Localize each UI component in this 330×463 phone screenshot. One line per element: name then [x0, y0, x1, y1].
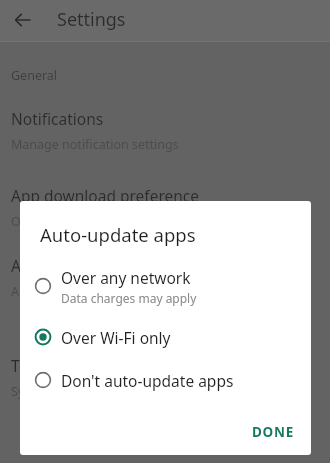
staticText: Auto-update over Wi-Fi: [11, 283, 146, 300]
staticText: Manage notification settings: [11, 136, 179, 153]
staticText: System default: [11, 383, 99, 400]
staticText: Over any network: [11, 213, 116, 230]
button[interactable]: DONE: [241, 415, 305, 449]
staticText: Auto-update apps: [40, 222, 196, 247]
button[interactable]: Over any network: [20, 263, 311, 309]
button[interactable]: Back: [8, 5, 38, 35]
staticText: App download preference: [11, 185, 200, 206]
staticText: Theme: [11, 355, 62, 376]
staticText: General: [11, 67, 58, 84]
staticText: DONE: [252, 423, 294, 441]
staticText: Settings: [57, 7, 126, 32]
staticText: Notifications: [11, 108, 104, 129]
staticText: Don't auto-update apps: [61, 370, 234, 391]
staticText: Over Wi-Fi only: [61, 327, 171, 348]
button[interactable]: Don't auto-update apps: [20, 364, 311, 396]
staticText: Auto-update apps: [11, 255, 142, 276]
button[interactable]: Over Wi-Fi only: [20, 321, 311, 353]
staticText: Over any network: [61, 267, 191, 288]
staticText: Data charges may apply: [61, 290, 197, 306]
